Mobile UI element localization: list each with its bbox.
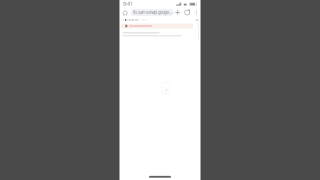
button[interactable]: Reload bbox=[182, 7, 192, 18]
button[interactable]: fix.samsonapi.google.prom bbox=[131, 9, 173, 16]
button[interactable]: New tab bbox=[173, 7, 182, 18]
button[interactable]: Home bbox=[120, 7, 131, 18]
staticText: fix.samsonapi.google.prom bbox=[133, 10, 172, 15]
staticText: 9:41 bbox=[123, 1, 132, 7]
button[interactable]: More options bbox=[192, 7, 200, 18]
